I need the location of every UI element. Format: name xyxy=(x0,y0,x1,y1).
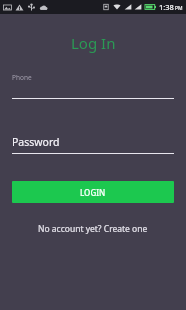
button[interactable]: LOGIN xyxy=(12,181,174,203)
staticText: Log In xyxy=(71,33,116,53)
button[interactable]: Password xyxy=(12,135,174,154)
staticText: 1:38 xyxy=(159,2,174,12)
staticText: LOGIN xyxy=(80,187,106,198)
button[interactable]: No account yet? Create one xyxy=(0,223,186,235)
staticText: Password xyxy=(12,135,60,149)
button[interactable]: Phone xyxy=(12,73,174,99)
staticText: Phone xyxy=(12,73,32,82)
staticText: No account yet? Create one xyxy=(38,223,148,235)
staticText: PM xyxy=(175,5,183,12)
